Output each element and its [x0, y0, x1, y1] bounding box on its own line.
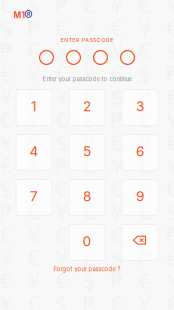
staticText: ¥: [138, 177, 152, 202]
button[interactable]: 0: [69, 224, 105, 260]
button[interactable]: 9: [122, 179, 158, 215]
staticText: €: [27, 131, 41, 156]
staticText: ¥: [83, 223, 97, 248]
button[interactable]: 8: [69, 179, 105, 215]
staticText: €: [55, 16, 69, 41]
staticText: $: [0, 16, 13, 41]
staticText: €: [138, 154, 152, 179]
staticText: 5: [83, 143, 91, 160]
button[interactable]: Delete: [122, 224, 158, 260]
staticText: €: [138, 200, 152, 225]
staticText: ®: [24, 8, 32, 23]
staticText: €: [83, 154, 97, 179]
staticText: $: [83, 269, 97, 294]
button[interactable]: 7: [16, 179, 52, 215]
staticText: 9: [136, 188, 144, 205]
staticText: 8: [83, 188, 91, 205]
staticText: €: [83, 246, 97, 271]
staticText: €: [27, 85, 41, 110]
button[interactable]: 1: [16, 89, 52, 125]
staticText: 4: [29, 143, 38, 160]
staticText: Enter your passcode to continue: [42, 75, 131, 83]
staticText: $: [27, 0, 41, 18]
staticText: €: [0, 0, 13, 18]
button[interactable]: 2: [69, 89, 105, 125]
staticText: 3: [136, 98, 144, 115]
staticText: M1: [14, 10, 26, 20]
staticText: €: [110, 62, 124, 87]
staticText: €: [138, 108, 152, 133]
staticText: €: [83, 200, 97, 225]
staticText: ₱: [27, 177, 41, 202]
staticText: €: [110, 16, 124, 41]
button[interactable]: 6: [122, 134, 158, 170]
staticText: 6: [136, 143, 144, 160]
staticText: ₱: [110, 269, 124, 294]
staticText: €: [83, 39, 97, 64]
staticText: ¥: [83, 16, 97, 41]
button[interactable]: 5: [69, 134, 105, 170]
staticText: 2: [83, 98, 91, 115]
button[interactable]: 3: [122, 89, 158, 125]
staticText: $: [83, 108, 97, 133]
staticText: 1: [31, 98, 37, 115]
staticText: ¥: [55, 246, 69, 271]
staticText: 0: [82, 233, 91, 250]
staticText: ₱: [27, 16, 41, 41]
staticText: ¥: [55, 39, 69, 64]
button[interactable]: Forgot your passcode ?: [37, 265, 137, 273]
staticText: Forgot your passcode ?: [53, 265, 120, 273]
staticText: €: [55, 62, 69, 87]
staticText: ₱: [83, 131, 97, 156]
staticText: ¥: [83, 62, 97, 87]
staticText: $: [138, 223, 152, 248]
button[interactable]: 4: [16, 134, 52, 170]
staticText: $: [27, 154, 41, 179]
